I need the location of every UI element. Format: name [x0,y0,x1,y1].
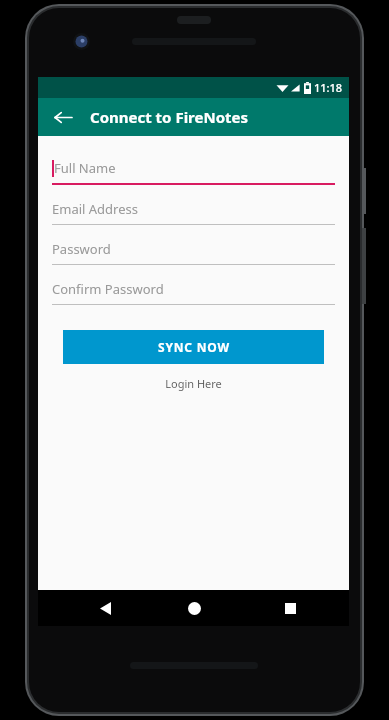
staticText: Full Name [54,159,116,177]
button[interactable]: Back [90,593,120,623]
staticText: 11:18 [314,80,343,95]
staticText: SYNC NOW [158,339,230,355]
staticText: Email Address [52,200,138,218]
staticText: Connect to FireNotes [90,107,249,127]
button[interactable]: Home [179,593,209,623]
button[interactable]: Password [52,239,335,265]
button[interactable]: Back [46,100,80,134]
button[interactable]: Email Address [52,199,335,225]
button[interactable]: SYNC NOW [63,330,324,364]
button[interactable]: Login Here [52,376,335,391]
button[interactable]: Confirm Password [52,279,335,305]
staticText: Password [52,240,111,258]
staticText: Login Here [165,376,222,391]
staticText: Confirm Password [52,280,164,298]
button[interactable]: Full Name [52,158,335,185]
button[interactable]: Recent apps [275,593,305,623]
